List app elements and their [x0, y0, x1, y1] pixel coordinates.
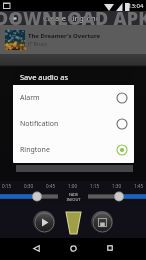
staticText: 0:45 [46, 183, 56, 189]
staticText: Alarm [20, 93, 116, 103]
staticText: 0:15 [2, 183, 12, 189]
staticText: The Dreamer's Overture [28, 32, 101, 40]
staticText: Save audio as [20, 72, 68, 82]
staticText: 1:15 [90, 183, 100, 189]
staticText: Ringtone [20, 145, 116, 155]
staticText: JT Bruce [28, 41, 48, 48]
staticText: 13:04 [128, 2, 144, 10]
staticText: 1:45 [134, 183, 144, 189]
button[interactable]: Home [62, 238, 84, 260]
staticText: DOWNLOAD APK [0, 6, 146, 30]
button[interactable]: Play [33, 211, 55, 233]
button[interactable]: Recents [99, 238, 121, 260]
button[interactable]: Back [0, 12, 25, 25]
staticText: 1:00 [68, 183, 78, 189]
staticText: FADE IN/OUT [66, 192, 81, 202]
button[interactable]: Save [91, 211, 113, 233]
button[interactable]: Ringtone [13, 137, 134, 163]
staticText: 0:30 [24, 183, 34, 189]
button[interactable]: Notification [13, 111, 134, 137]
staticText: Notification [20, 119, 116, 129]
button[interactable]: Fade in slider [0, 190, 58, 203]
button[interactable]: Back [25, 238, 47, 260]
button[interactable]: Alarm [13, 85, 134, 111]
button[interactable]: Fade out slider [88, 190, 146, 203]
staticText: Create Ringtone [43, 13, 100, 23]
staticText: 1:30 [112, 183, 122, 189]
